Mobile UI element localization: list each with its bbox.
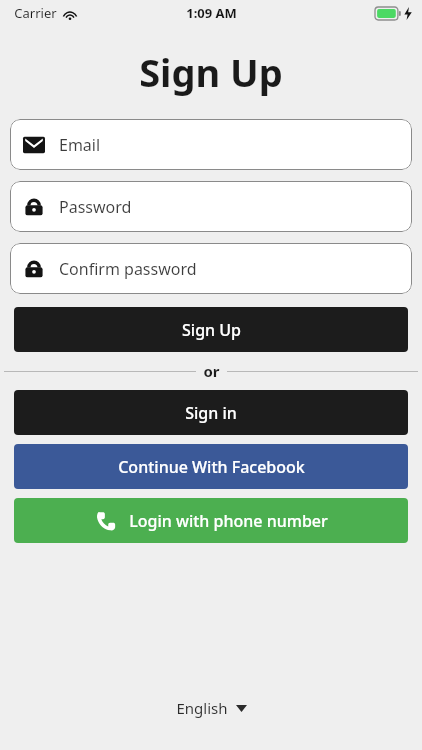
button[interactable]: Password xyxy=(10,181,412,232)
staticText: or xyxy=(203,361,220,381)
button[interactable]: Continue With Facebook xyxy=(14,444,408,489)
staticText: Sign in xyxy=(185,402,237,424)
button[interactable]: Login with phone number xyxy=(14,498,408,543)
staticText: 1:09 AM xyxy=(186,4,237,22)
staticText: Email xyxy=(59,134,101,156)
staticText: Confirm password xyxy=(59,258,197,280)
staticText: English xyxy=(176,698,228,718)
staticText: Sign Up xyxy=(182,319,241,341)
button[interactable]: Confirm password xyxy=(10,243,412,294)
button[interactable]: Sign in xyxy=(14,390,408,435)
staticText: Password xyxy=(59,196,132,218)
staticText: Carrier xyxy=(14,4,57,22)
staticText: Continue With Facebook xyxy=(118,456,305,478)
button[interactable]: English xyxy=(0,688,422,728)
staticText: Login with phone number xyxy=(129,510,328,532)
button[interactable]: Sign Up xyxy=(14,307,408,352)
staticText: Sign Up xyxy=(139,46,283,98)
button[interactable]: Email xyxy=(10,119,412,170)
